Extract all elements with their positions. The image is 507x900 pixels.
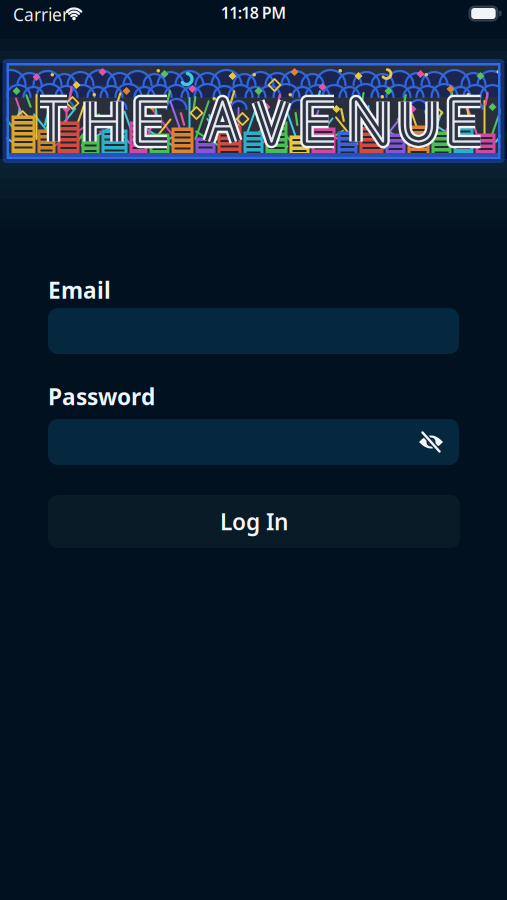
button[interactable]: Show password — [409, 420, 453, 464]
button[interactable]: Log In — [48, 495, 460, 548]
staticText: Password — [48, 381, 155, 412]
staticText: Carrier — [13, 3, 69, 26]
staticText: Log In — [220, 506, 288, 536]
staticText: 11:18 PM — [221, 2, 286, 23]
staticText: Email — [48, 275, 111, 305]
